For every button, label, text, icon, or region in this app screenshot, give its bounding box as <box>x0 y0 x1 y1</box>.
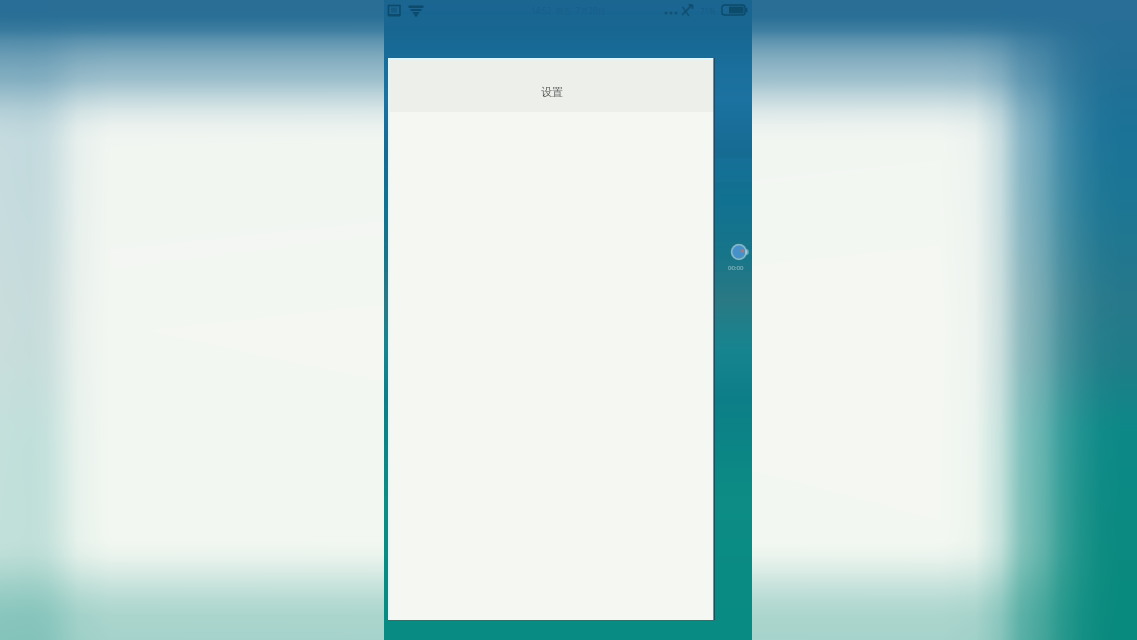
button[interactable]: Timer 00:00 <box>725 240 749 278</box>
staticText: 设置 <box>541 85 563 99</box>
button[interactable]: 设置 <box>388 58 715 621</box>
button[interactable]: Wi-Fi <box>408 4 424 17</box>
staticText: 00:00 <box>728 264 744 272</box>
button[interactable]: Screenshot <box>388 5 401 17</box>
